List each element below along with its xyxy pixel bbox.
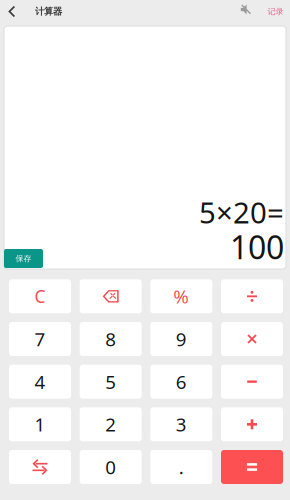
staticText: 4 xyxy=(34,369,45,394)
button[interactable]: 5 xyxy=(80,365,142,399)
button[interactable]: Plus xyxy=(221,407,283,441)
button[interactable]: 4 xyxy=(9,365,71,399)
staticText: 计算器 xyxy=(35,6,62,17)
button[interactable]: Backspace xyxy=(80,279,142,313)
staticText: 7 xyxy=(34,327,45,351)
staticText: 5×20= xyxy=(199,193,284,232)
button[interactable]: 9 xyxy=(150,322,212,356)
button[interactable]: Mute xyxy=(233,0,259,23)
button[interactable]: Multiply xyxy=(221,322,283,356)
button[interactable]: Minus xyxy=(221,365,283,399)
button[interactable]: Equals xyxy=(221,450,283,484)
staticText: 6 xyxy=(176,369,187,394)
staticText: 2 xyxy=(105,412,116,437)
staticText: . xyxy=(179,455,184,479)
staticText: C xyxy=(34,285,45,308)
staticText: 9 xyxy=(176,327,187,351)
button[interactable]: Swap xyxy=(9,450,71,484)
staticText: 0 xyxy=(105,455,116,479)
button[interactable]: 保存 xyxy=(4,249,43,268)
staticText: 1 xyxy=(34,412,45,437)
button[interactable]: 3 xyxy=(150,407,212,441)
staticText: % xyxy=(173,284,189,309)
staticText: 3 xyxy=(176,412,187,437)
button[interactable]: 记录 xyxy=(265,0,286,23)
button[interactable]: 6 xyxy=(150,365,212,399)
staticText: 8 xyxy=(105,327,116,351)
button[interactable]: 1 xyxy=(9,407,71,441)
button[interactable]: 2 xyxy=(80,407,142,441)
button[interactable]: . xyxy=(150,450,212,484)
staticText: 记录 xyxy=(267,7,283,16)
button[interactable]: Back xyxy=(4,0,19,23)
button[interactable]: C xyxy=(9,279,71,313)
button[interactable]: 0 xyxy=(80,450,142,484)
button[interactable]: Divide xyxy=(221,279,283,313)
staticText: 保存 xyxy=(15,254,31,263)
button[interactable]: 8 xyxy=(80,322,142,356)
button[interactable]: % xyxy=(150,279,212,313)
staticText: 100 xyxy=(230,225,284,268)
button[interactable]: 7 xyxy=(9,322,71,356)
staticText: 5 xyxy=(105,369,116,394)
